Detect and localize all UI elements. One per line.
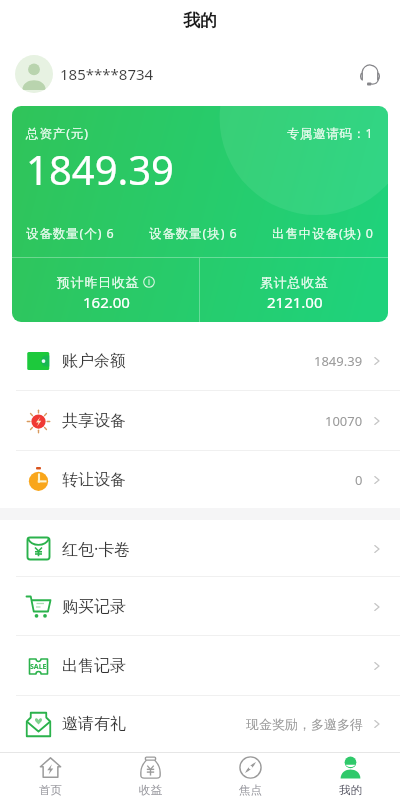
staticText: 首页 bbox=[39, 783, 62, 797]
button[interactable]: 邀请有礼 bbox=[0, 696, 400, 752]
staticText: 累计总收益 bbox=[260, 274, 329, 290]
staticText: 我的 bbox=[339, 783, 362, 797]
staticText: 现金奖励，多邀多得 bbox=[246, 716, 363, 732]
staticText: 设备数量(块) 6 bbox=[149, 225, 238, 242]
staticText: 10070 bbox=[325, 412, 363, 430]
staticText: 出售中设备(块) 0 bbox=[272, 225, 374, 242]
staticText: 1849.39 bbox=[26, 142, 174, 196]
staticText: 185****8734 bbox=[60, 64, 154, 84]
staticText: 收益 bbox=[139, 783, 162, 797]
button[interactable]: 共享设备 bbox=[0, 391, 400, 451]
staticText: 1849.39 bbox=[314, 352, 363, 370]
button[interactable]: 首页 bbox=[0, 752, 100, 801]
button[interactable]: 累计总收益 bbox=[200, 258, 388, 322]
staticText: 162.00 bbox=[83, 292, 130, 312]
staticText: 购买记录 bbox=[62, 597, 126, 617]
button[interactable]: 账户余额 bbox=[0, 331, 400, 391]
staticText: 焦点 bbox=[239, 783, 262, 797]
staticText: 专属邀请码：1 bbox=[287, 125, 374, 142]
button[interactable]: SALE bbox=[0, 636, 400, 696]
staticText: 我的 bbox=[183, 10, 217, 31]
staticText: 邀请有礼 bbox=[62, 714, 126, 734]
button[interactable]: 焦点 bbox=[200, 752, 300, 801]
staticText: 红包·卡卷 bbox=[62, 538, 131, 560]
staticText: 共享设备 bbox=[62, 411, 126, 431]
button[interactable]: 红包·卡卷 bbox=[0, 520, 400, 577]
button[interactable]: 转让设备 bbox=[0, 451, 400, 508]
staticText: 出售记录 bbox=[62, 656, 126, 676]
staticText: 总资产(元) bbox=[26, 125, 89, 142]
staticText: 账户余额 bbox=[62, 351, 126, 371]
button[interactable]: 预计昨日收益 bbox=[12, 258, 199, 322]
button[interactable]: 我的 bbox=[300, 752, 400, 801]
button[interactable]: Customer service bbox=[356, 60, 384, 88]
button[interactable]: 购买记录 bbox=[0, 577, 400, 636]
staticText: 0 bbox=[355, 471, 363, 489]
staticText: 2121.00 bbox=[267, 292, 323, 312]
staticText: 设备数量(个) 6 bbox=[26, 225, 115, 242]
staticText: 预计昨日收益 bbox=[57, 274, 140, 290]
button[interactable]: 收益 bbox=[100, 752, 200, 801]
button[interactable]: 185****8734 bbox=[0, 41, 400, 106]
staticText: SALE bbox=[30, 662, 47, 672]
staticText: 转让设备 bbox=[62, 470, 126, 490]
